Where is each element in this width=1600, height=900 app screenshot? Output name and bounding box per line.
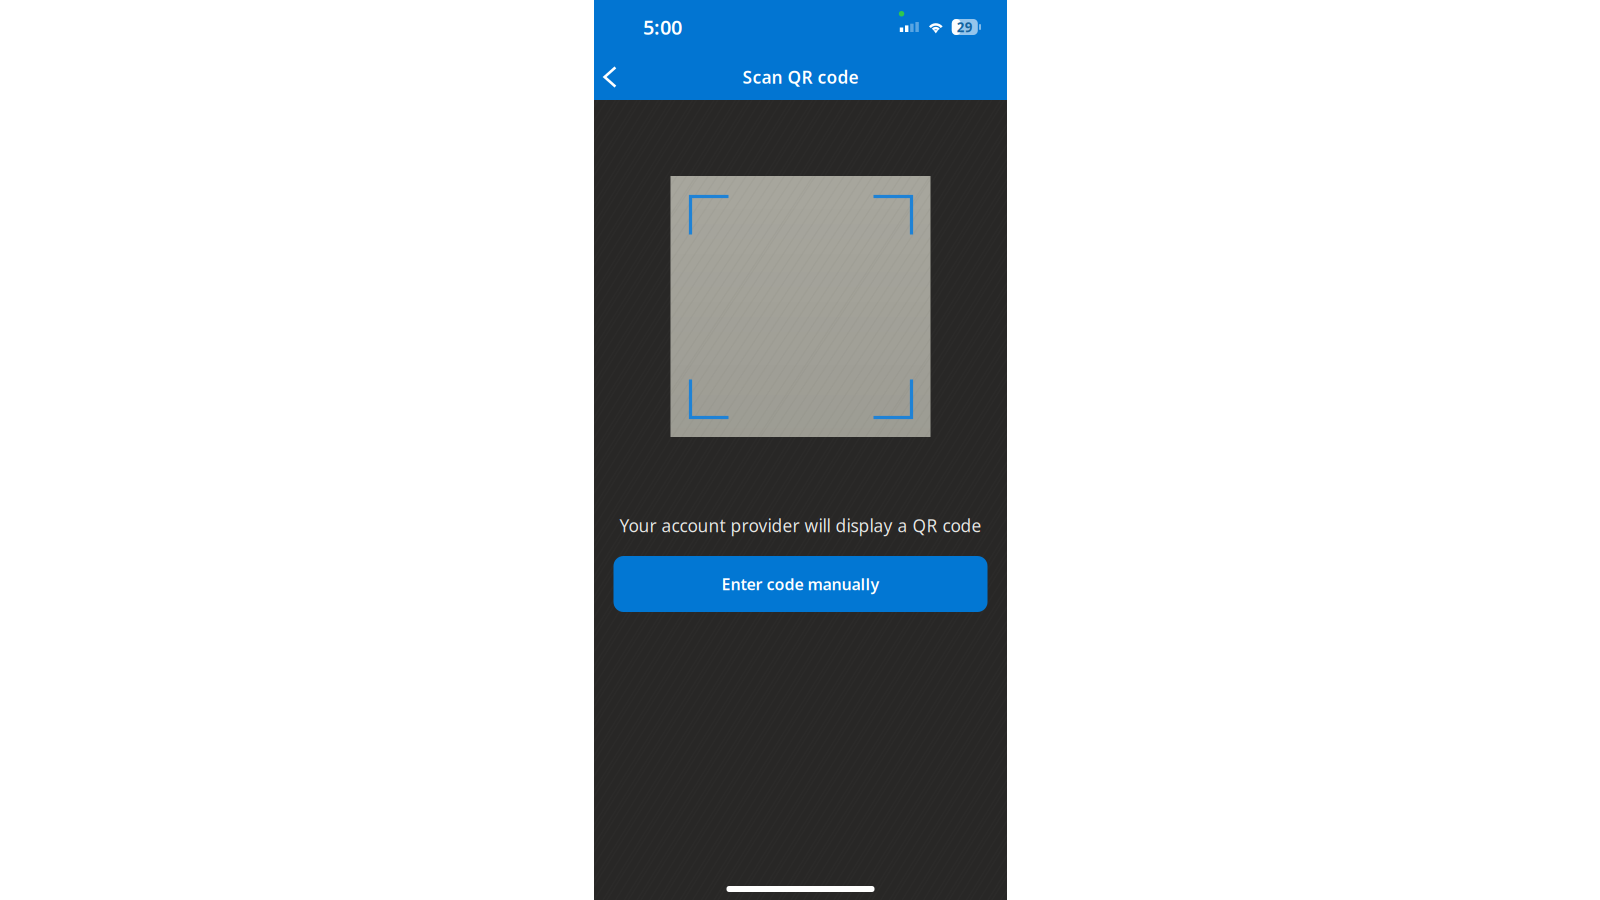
staticText: Scan QR code bbox=[742, 65, 858, 88]
staticText: Your account provider will display a QR … bbox=[619, 514, 981, 537]
button[interactable]: Enter code manually bbox=[613, 556, 987, 612]
staticText: Enter code manually bbox=[721, 573, 879, 595]
staticText: 29 bbox=[957, 18, 973, 36]
staticText: 5:00 bbox=[643, 14, 682, 40]
button[interactable]: Back bbox=[594, 55, 635, 99]
